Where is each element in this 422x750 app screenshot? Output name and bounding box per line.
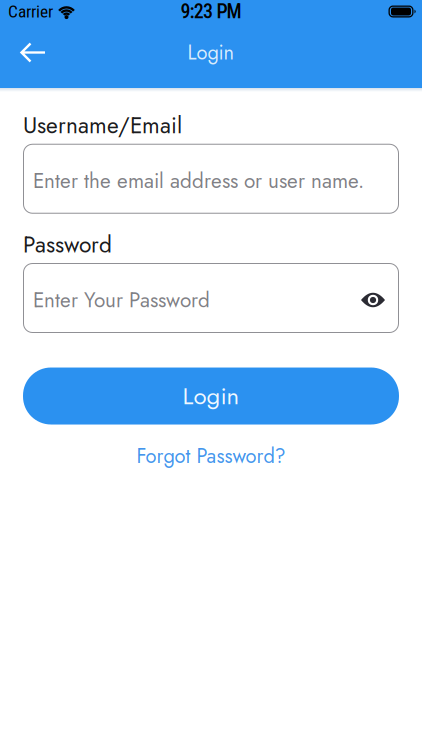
button[interactable]: Forgot Password? [136, 441, 285, 470]
button[interactable] [0, 28, 46, 76]
staticText: Password [23, 228, 112, 261]
staticText: 9:23 PM [180, 0, 242, 23]
button[interactable]: Enter the email address or user name. [23, 144, 399, 214]
staticText: Username/Email [23, 109, 182, 142]
button[interactable]: Enter Your Password [23, 263, 399, 333]
staticText: Forgot Password? [136, 441, 285, 470]
staticText: Enter the email address or user name. [33, 166, 364, 196]
button[interactable] [361, 292, 389, 308]
staticText: Login [182, 379, 239, 413]
button[interactable]: Login [23, 367, 399, 424]
staticText: Carrier [8, 1, 53, 22]
staticText: Enter Your Password [33, 285, 210, 315]
staticText: Login [187, 38, 234, 67]
